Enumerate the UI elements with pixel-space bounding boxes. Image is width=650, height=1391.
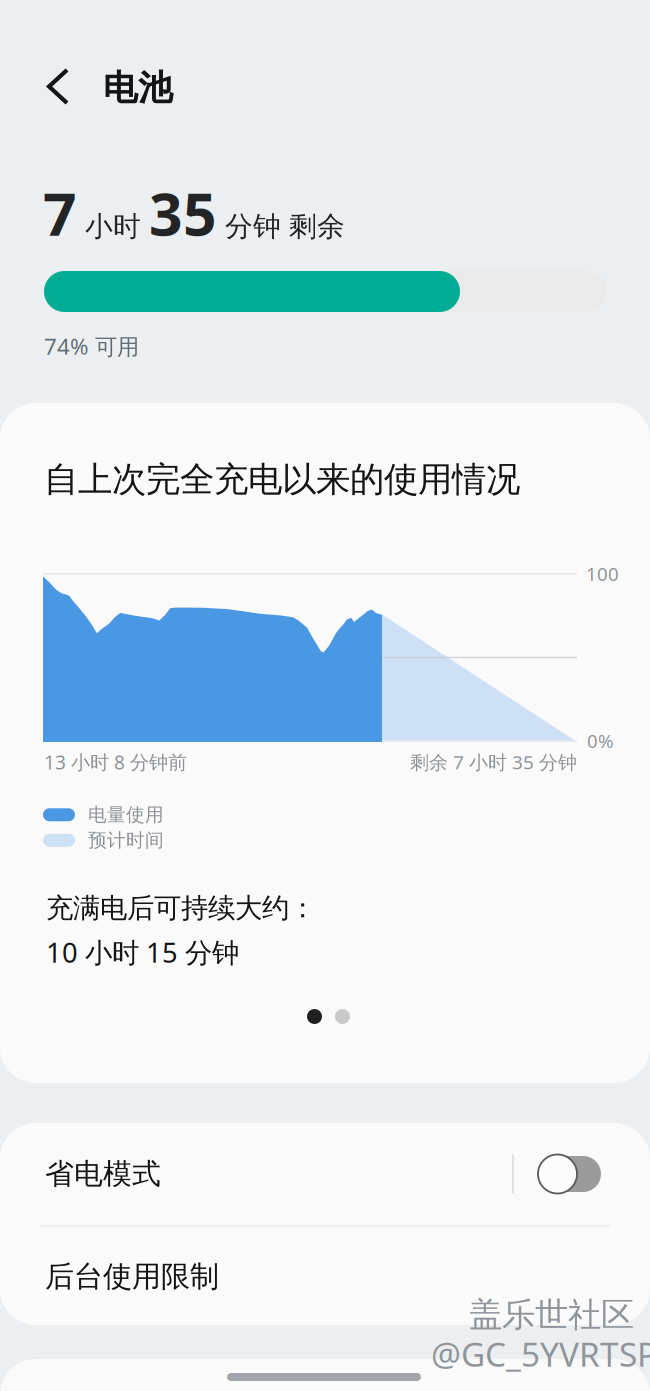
- staticText: 自上次完全充电以来的使用情况: [44, 458, 520, 501]
- button[interactable]: 后台使用限制: [0, 1227, 650, 1327]
- staticText: 7: [43, 173, 77, 253]
- staticText: 后台使用限制: [45, 1258, 219, 1295]
- staticText: 分钟 剩余: [217, 209, 345, 244]
- staticText: 省电模式: [45, 1156, 161, 1192]
- staticText: @GC_5YVRTSP: [431, 1331, 650, 1376]
- staticText: 预计时间: [88, 828, 164, 852]
- staticText: 74% 可用: [44, 331, 139, 361]
- staticText: 剩余 7 小时 35 分钟: [410, 749, 577, 775]
- staticText: 100: [586, 561, 619, 586]
- staticText: 小时: [77, 209, 149, 244]
- button[interactable]: Back: [31, 52, 87, 121]
- staticText: 盖乐世社区: [469, 1294, 634, 1336]
- staticText: 13 小时 8 分钟前: [44, 749, 187, 775]
- staticText: 电量使用: [88, 803, 164, 826]
- button[interactable]: 省电模式: [0, 1123, 650, 1225]
- staticText: 10 小时 15 分钟: [46, 933, 239, 971]
- staticText: 充满电后可持续大约：: [46, 891, 316, 925]
- staticText: 0%: [587, 728, 614, 753]
- staticText: 电池: [103, 66, 173, 110]
- staticText: 35: [149, 173, 217, 253]
